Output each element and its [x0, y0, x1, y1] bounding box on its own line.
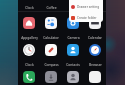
- button[interactable]: Drawer setting: [69, 1, 103, 12]
- button[interactable]: AppGallery: [18, 16, 40, 29]
- staticText: Drawer setting: [77, 5, 100, 9]
- button[interactable]: Contacts: [62, 70, 84, 83]
- staticText: Calendar: [88, 35, 102, 39]
- staticText: Contacts: [66, 62, 80, 66]
- button[interactable]: Downloads: [40, 70, 62, 83]
- staticText: Calculator: [43, 35, 59, 39]
- staticText: Browser: [89, 62, 102, 66]
- staticText: Compass: [44, 62, 59, 66]
- button[interactable]: Calendar: [84, 16, 106, 29]
- button[interactable]: Compass: [40, 43, 62, 56]
- button[interactable]: Browser: [84, 43, 106, 56]
- button[interactable]: Contacts: [62, 43, 84, 56]
- staticText: Doc: [70, 5, 76, 9]
- button[interactable]: Phone: [18, 70, 40, 83]
- staticText: Create folder: [77, 16, 97, 20]
- button[interactable]: Create folder: [69, 12, 103, 22]
- button[interactable]: Clock: [18, 43, 40, 56]
- staticText: Drive: [91, 5, 100, 9]
- staticText: Coffee: [46, 5, 57, 9]
- staticText: Appgallery: [21, 35, 38, 39]
- staticText: Clock: [25, 5, 34, 9]
- staticText: Clock: [25, 62, 34, 66]
- button[interactable]: Camera: [62, 16, 84, 29]
- button[interactable]: Calculator: [40, 16, 62, 29]
- staticText: Camera: [67, 35, 80, 39]
- button[interactable]: Themes: [84, 70, 106, 83]
